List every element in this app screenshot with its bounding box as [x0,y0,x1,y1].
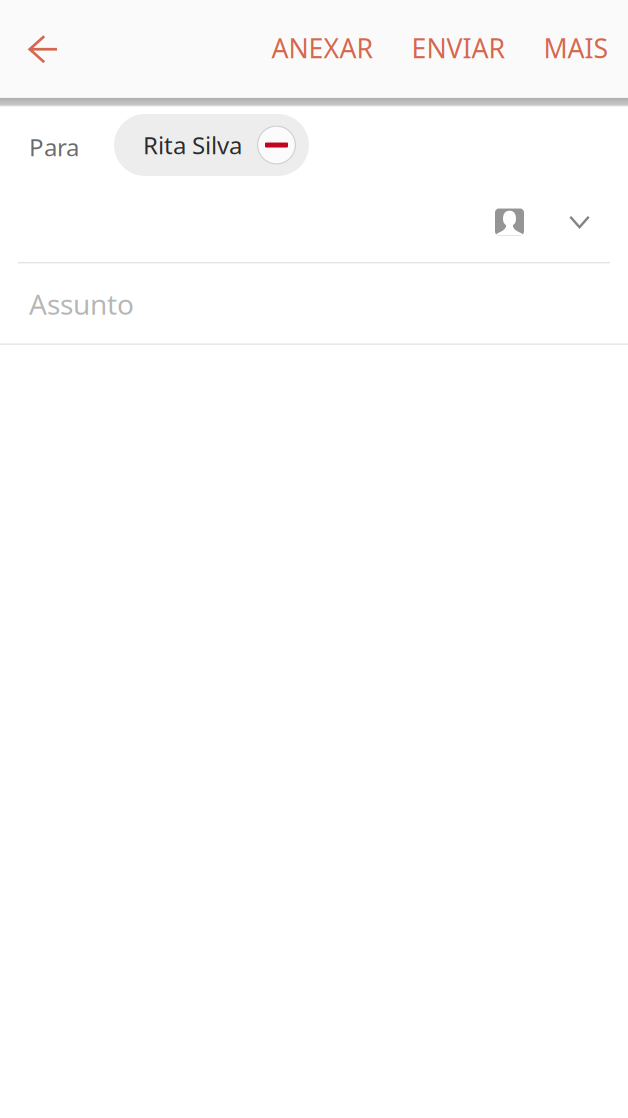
staticText: MAIS [543,30,608,66]
staticText: Rita Silva [143,129,242,161]
button[interactable]: MAIS [524,0,627,96]
button[interactable]: Show Cc and Bcc [569,197,628,247]
staticText: ANEXAR [271,30,373,66]
staticText: Assunto [29,285,134,322]
staticText: Para [29,131,79,163]
button[interactable]: Back [0,0,84,96]
button[interactable]: Rita Silva [114,114,309,176]
button[interactable]: Add from contacts [495,197,569,247]
button[interactable]: ANEXAR [252,0,392,96]
staticText: ENVIAR [411,30,505,66]
button[interactable]: ENVIAR [392,0,524,96]
